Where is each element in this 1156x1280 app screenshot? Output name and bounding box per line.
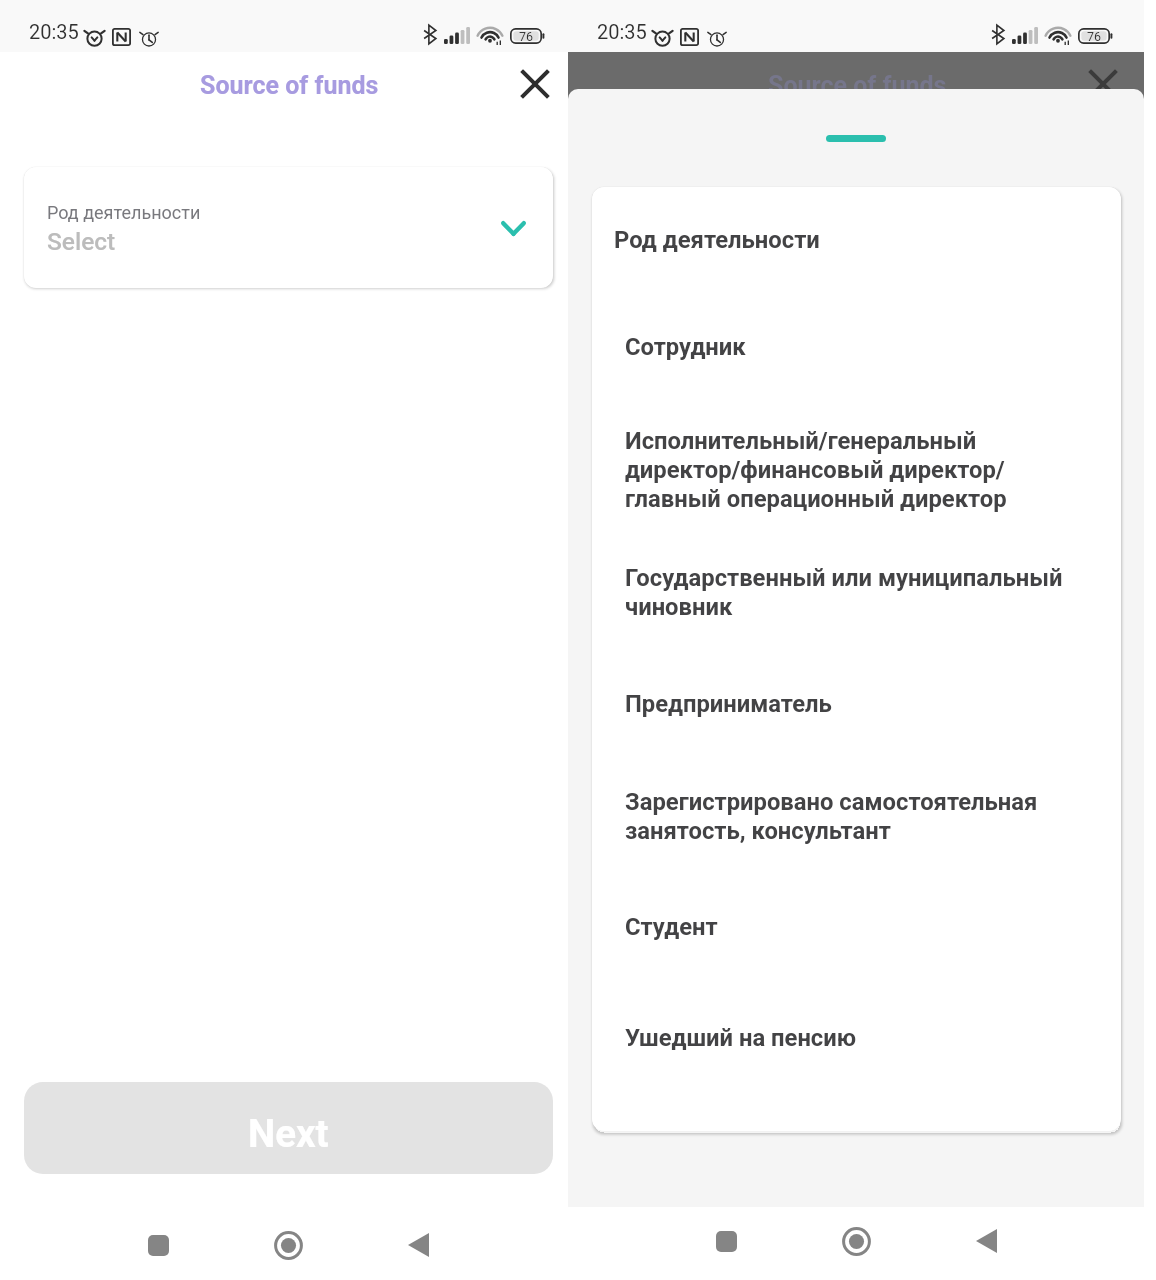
button[interactable]: Recent apps [704,1219,748,1263]
staticText: Select [47,227,116,256]
staticText: Ушедший на пенсию [625,1024,857,1052]
staticText: Source of funds [768,71,947,100]
button[interactable]: Государственный или муниципальный чиновн… [592,525,1121,651]
button[interactable]: Ушедший на пенсию [592,985,1121,1052]
button[interactable]: Close [511,60,559,108]
button[interactable]: Home [834,1219,878,1263]
button[interactable]: Back [964,1219,1008,1263]
staticText: Зарегистрировано самостоятельная занятос… [625,788,1038,845]
button[interactable]: Зарегистрировано самостоятельная занятос… [592,749,1121,874]
staticText: Студент [625,913,718,941]
button[interactable]: Next [24,1082,553,1174]
staticText: Предприниматель [625,690,832,718]
button[interactable]: Home [266,1223,310,1267]
staticText: 76 [1087,29,1102,44]
staticText: Сотрудник [625,333,746,361]
button[interactable]: Back [396,1223,440,1267]
button[interactable]: Сотрудник [592,294,1121,388]
button[interactable]: Recent apps [136,1223,180,1267]
staticText: 76 [519,29,534,44]
button[interactable]: Исполнительный/генеральный директор/фина… [592,388,1121,525]
staticText: Род деятельности [614,226,820,254]
staticText: Source of funds [200,71,379,100]
staticText: 20:35 [597,20,647,43]
button[interactable]: Предприниматель [592,651,1121,749]
button[interactable]: Род деятельности [24,167,553,288]
staticText: Род деятельности [47,202,201,223]
button[interactable]: Студент [592,874,1121,985]
staticText: 20:35 [29,20,79,43]
staticText: Государственный или муниципальный чиновн… [625,564,1063,621]
staticText: Исполнительный/генеральный директор/фина… [625,427,1007,513]
staticText: Next [248,1111,329,1156]
